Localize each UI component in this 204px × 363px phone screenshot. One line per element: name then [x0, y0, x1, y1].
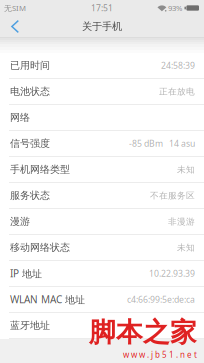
staticText: 未知 — [177, 164, 195, 175]
staticText: 服务状态 — [10, 189, 50, 202]
staticText: 电池状态 — [10, 85, 50, 98]
button[interactable]: 手机网络类型 — [0, 157, 204, 183]
button[interactable]: Back — [0, 16, 30, 37]
button[interactable]: 信号强度 — [0, 131, 204, 157]
staticText: 正在放电 — [159, 86, 195, 97]
button[interactable]: 电池状态 — [0, 79, 204, 105]
staticText: WLAN MAC 地址 — [10, 293, 85, 306]
staticText: 手机网络类型 — [10, 163, 70, 176]
staticText: 93% — [168, 3, 182, 13]
staticText: 已用时间 — [10, 59, 50, 72]
staticText: 漫游 — [10, 215, 30, 228]
button[interactable]: WLAN MAC 地址 — [0, 287, 204, 313]
staticText: 网络 — [10, 111, 30, 124]
button[interactable]: IP 地址 — [0, 261, 204, 287]
staticText: 蓝牙地址 — [10, 319, 50, 332]
button[interactable]: 网络 — [0, 105, 204, 131]
staticText: 不在服务区 — [150, 190, 195, 201]
staticText: IP 地址 — [10, 267, 42, 280]
staticText: c4:66:99:5e:de:ca — [127, 294, 195, 305]
staticText: w w w . j b 5 1 . n e t — [123, 349, 197, 360]
button[interactable]: 移动网络状态 — [0, 235, 204, 261]
staticText: 关于手机 — [82, 20, 122, 33]
staticText: 脚本之家 — [89, 315, 197, 349]
staticText: 无SIM — [4, 3, 26, 13]
button[interactable]: 已用时间 — [0, 53, 204, 79]
staticText: 信号强度 — [10, 137, 50, 150]
staticText: 17:51 — [91, 2, 113, 14]
button[interactable]: 漫游 — [0, 209, 204, 235]
staticText: 24:58:39 — [161, 60, 195, 71]
staticText: -85 dBm 14 asu — [129, 138, 195, 149]
button[interactable]: 蓝牙地址 — [0, 313, 204, 339]
staticText: 移动网络状态 — [10, 241, 70, 254]
staticText: 非漫游 — [168, 216, 195, 227]
button[interactable]: 服务状态 — [0, 183, 204, 209]
staticText: 10.22.93.39 — [149, 268, 195, 279]
staticText: 未知 — [177, 242, 195, 253]
